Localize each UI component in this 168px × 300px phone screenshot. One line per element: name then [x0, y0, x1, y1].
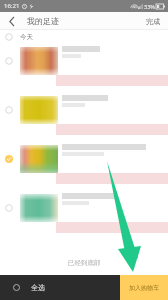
button[interactable]: 完成	[138, 12, 168, 30]
staticText: 今天	[20, 33, 33, 41]
button[interactable]: 全选	[0, 275, 120, 300]
staticText: 我的足迹	[27, 16, 59, 26]
button[interactable]	[0, 93, 168, 142]
button[interactable]	[0, 191, 168, 240]
button[interactable]: 今天	[0, 30, 168, 44]
staticText: 全选	[31, 283, 45, 292]
button[interactable]	[0, 142, 168, 191]
staticText: 已经到底部	[68, 259, 101, 267]
staticText: 加入购物车	[129, 284, 159, 292]
staticText: 33%	[144, 3, 155, 10]
button[interactable]: 加入购物车	[120, 275, 168, 300]
button[interactable]: 返回	[0, 12, 22, 30]
staticText: 16:21	[4, 2, 20, 10]
button[interactable]	[0, 44, 168, 93]
staticText: 完成	[146, 17, 160, 26]
